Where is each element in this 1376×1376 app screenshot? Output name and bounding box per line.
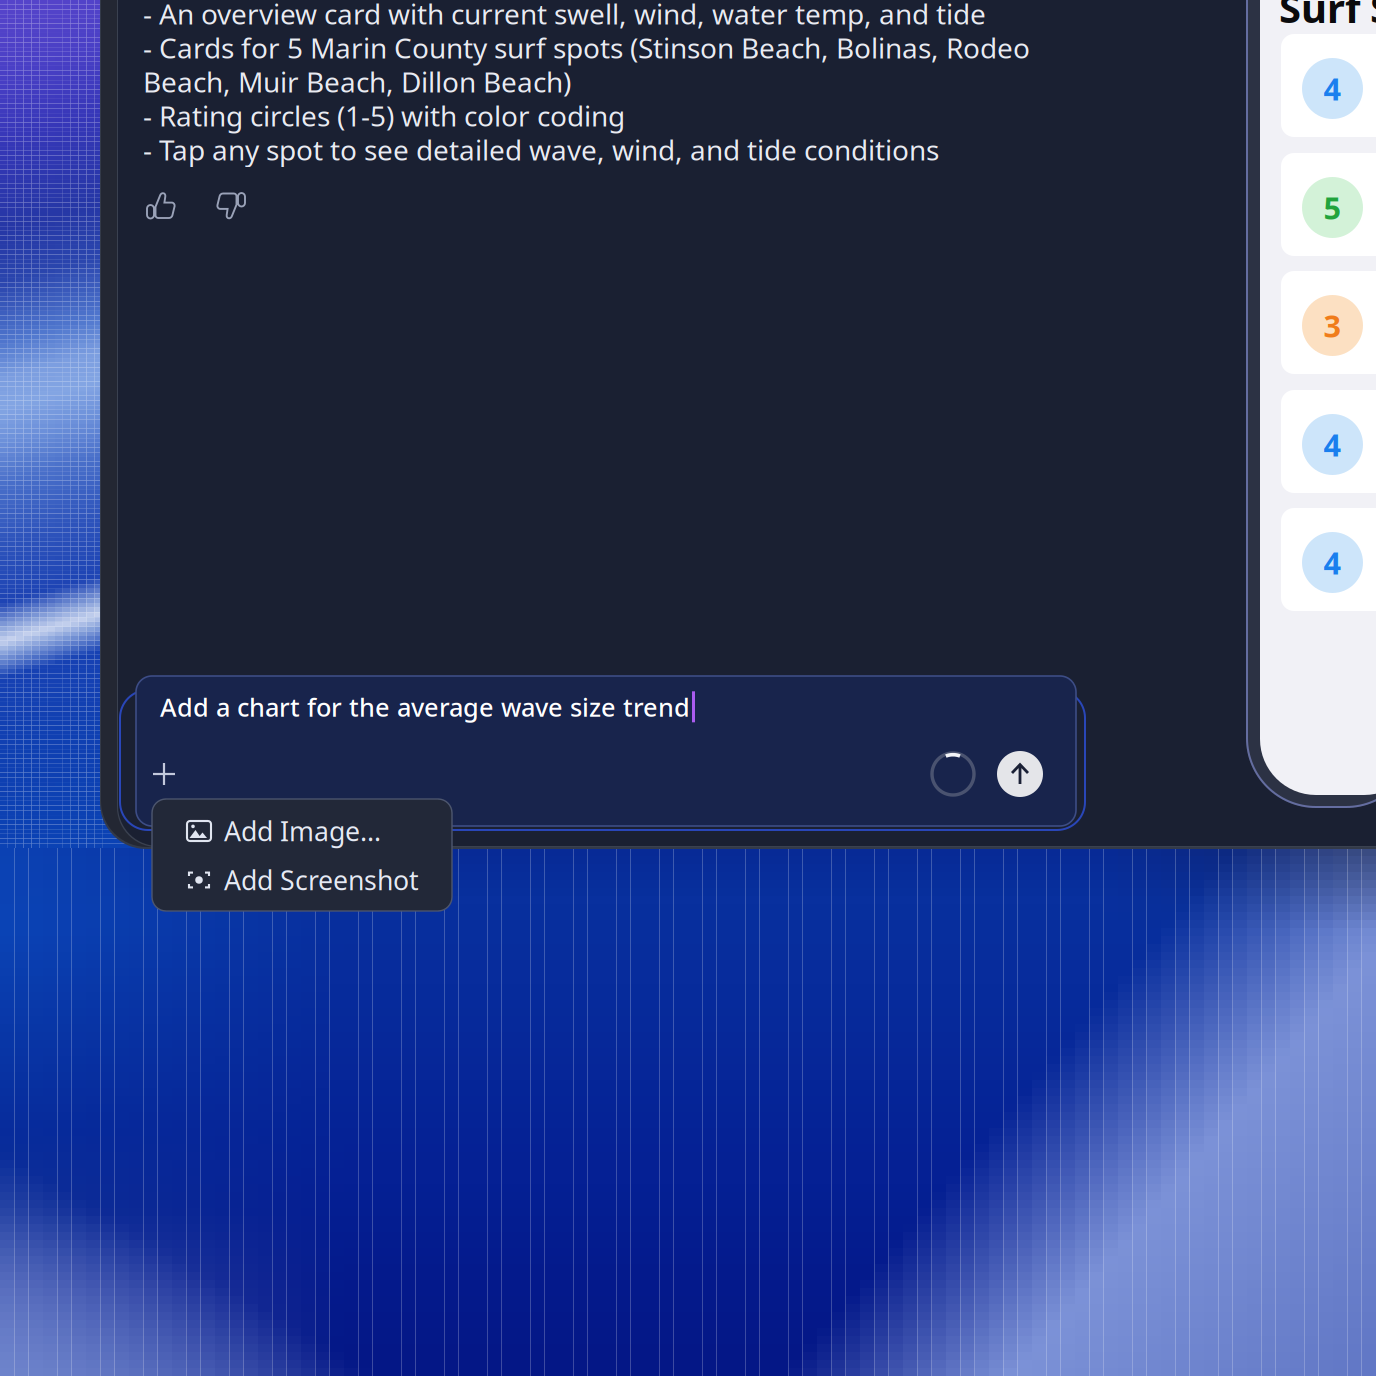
staticText: Surf Spots bbox=[1279, 0, 1376, 34]
button[interactable]: Add Screenshot bbox=[152, 855, 452, 905]
staticText: Add Image… bbox=[224, 813, 381, 849]
button[interactable]: Add Image… bbox=[152, 806, 452, 856]
staticText: - An overview card with current swell, w… bbox=[143, 0, 986, 32]
staticText: Beach, Muir Beach, Dillon Beach) bbox=[143, 63, 571, 100]
staticText: Add a chart for the average wave size tr… bbox=[160, 690, 690, 724]
staticText: - Tap any spot to see detailed wave, win… bbox=[143, 131, 939, 168]
staticText: 3 bbox=[1323, 305, 1341, 346]
button[interactable]: Bad response bbox=[215, 190, 247, 222]
staticText: 5 bbox=[1323, 187, 1341, 228]
button[interactable]: Good response bbox=[145, 190, 177, 222]
staticText: - Cards for 5 Marin County surf spots (S… bbox=[143, 29, 1030, 66]
staticText: 4 bbox=[1323, 424, 1341, 465]
button[interactable]: Add attachment bbox=[152, 762, 176, 786]
staticText: - Rating circles (1-5) with color coding bbox=[143, 97, 625, 134]
staticText: 4 bbox=[1323, 68, 1341, 109]
staticText: 4 bbox=[1323, 542, 1341, 583]
button[interactable]: Send bbox=[997, 751, 1043, 797]
staticText: Add Screenshot bbox=[224, 862, 419, 898]
